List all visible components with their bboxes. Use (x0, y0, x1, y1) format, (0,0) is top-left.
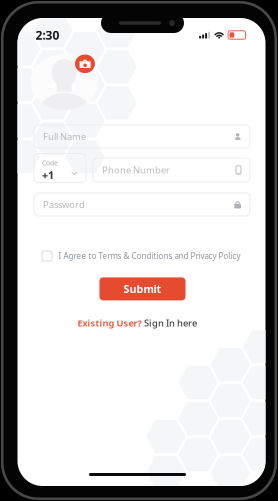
button[interactable]: I Agree to Terms & Conditions and Privac… (42, 249, 258, 263)
button[interactable]: Change profile photo (75, 54, 95, 73)
button[interactable]: Password (34, 193, 250, 216)
staticText: Full Name (43, 130, 86, 143)
button[interactable]: Full Name (34, 125, 250, 148)
button[interactable]: Existing User? (77, 316, 207, 330)
staticText: 2:30 (35, 27, 59, 43)
staticText: Password (43, 198, 85, 211)
staticText: +1 (42, 168, 54, 182)
staticText: Existing User? (77, 317, 141, 329)
button[interactable]: Country code +1 (34, 153, 86, 182)
button[interactable]: Phone Number (93, 158, 250, 182)
staticText: Submit (123, 282, 161, 296)
button[interactable]: Submit (99, 277, 185, 300)
staticText: Code (42, 158, 58, 167)
staticText: Phone Number (102, 164, 170, 176)
staticText: Sign In here (144, 317, 197, 329)
staticText: I Agree to Terms & Conditions and Privac… (58, 251, 240, 261)
